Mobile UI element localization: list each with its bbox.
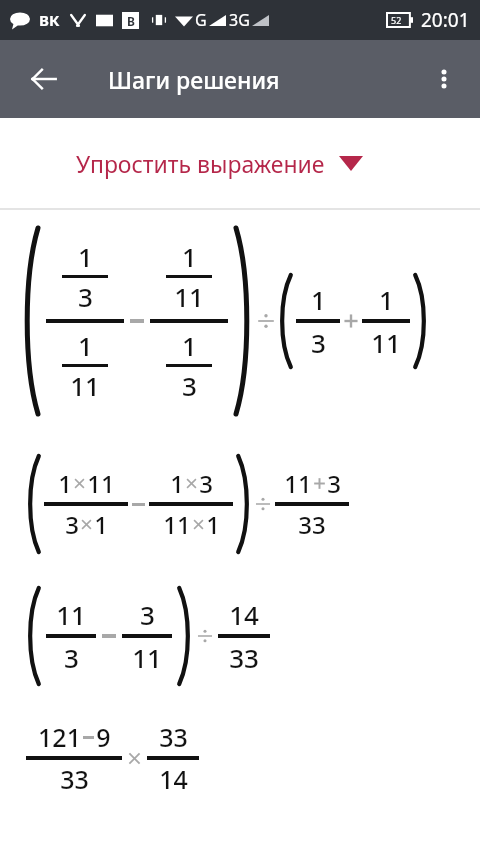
staticText: 1: [206, 508, 220, 541]
staticText: 3: [199, 467, 213, 500]
staticText: 121: [38, 720, 81, 754]
staticText: 1: [311, 282, 326, 317]
staticText: 11: [174, 279, 204, 314]
staticText: 3: [311, 325, 326, 360]
staticText: B: [127, 13, 135, 29]
staticText: 1: [182, 239, 197, 274]
staticText: 1: [379, 282, 394, 317]
staticText: 1: [58, 467, 72, 500]
staticText: 14: [159, 762, 188, 796]
staticText: 11: [284, 467, 312, 500]
staticText: 11: [132, 640, 162, 675]
staticText: 1: [182, 328, 197, 363]
staticText: G: [195, 9, 207, 31]
staticText: Упростить выражение: [76, 148, 325, 179]
staticText: 11: [87, 467, 115, 500]
staticText: 52: [391, 14, 402, 26]
staticText: 14: [229, 597, 259, 632]
staticText: 3: [78, 279, 93, 314]
staticText: 11: [70, 368, 100, 403]
staticText: 33: [298, 508, 326, 541]
staticText: 33: [229, 640, 259, 675]
staticText: 3: [65, 508, 79, 541]
staticText: ВК: [39, 10, 60, 30]
button[interactable]: Назад: [16, 51, 72, 107]
staticText: 11: [163, 508, 191, 541]
staticText: 33: [60, 762, 89, 796]
staticText: 11: [56, 597, 86, 632]
staticText: 3: [327, 467, 341, 500]
staticText: Шаги решения: [108, 64, 280, 95]
staticText: 1: [170, 467, 184, 500]
staticText: 3: [182, 368, 197, 403]
staticText: 3: [64, 640, 79, 675]
staticText: 11: [371, 325, 401, 360]
staticText: 1: [78, 328, 93, 363]
staticText: 3: [140, 597, 155, 632]
staticText: 20:01: [421, 7, 470, 33]
staticText: 33: [159, 720, 188, 754]
staticText: 9: [96, 720, 111, 754]
staticText: 1: [78, 239, 93, 274]
button[interactable]: Ещё: [418, 53, 470, 105]
staticText: 3G: [229, 9, 250, 31]
button[interactable]: Упростить выражение: [0, 118, 480, 208]
staticText: 1: [94, 508, 108, 541]
